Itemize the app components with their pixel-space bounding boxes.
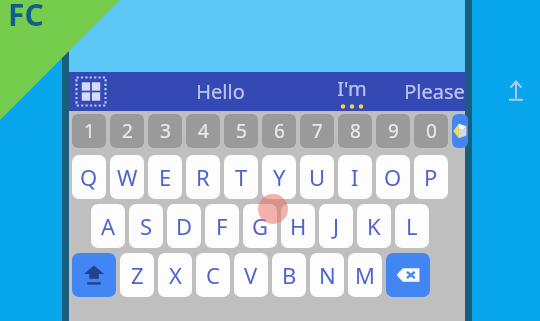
button[interactable]: 7 xyxy=(300,114,334,148)
staticText: J xyxy=(333,211,340,241)
staticText: V xyxy=(244,260,258,290)
button[interactable]: X xyxy=(158,253,192,297)
button[interactable]: G xyxy=(243,204,277,248)
staticText: T xyxy=(235,162,248,192)
button[interactable]: 3 xyxy=(148,114,182,148)
staticText: I xyxy=(351,162,359,192)
staticText: L xyxy=(406,211,418,241)
staticText: Q xyxy=(80,162,98,192)
button[interactable]: 1 xyxy=(72,114,106,148)
staticText: R xyxy=(196,162,210,192)
staticText: U xyxy=(309,162,326,192)
staticText: O xyxy=(384,162,402,192)
button[interactable]: P xyxy=(414,155,448,199)
button[interactable]: Shift xyxy=(72,253,116,297)
staticText: F xyxy=(216,211,228,241)
button[interactable]: F xyxy=(205,204,239,248)
staticText: H xyxy=(290,211,307,241)
button[interactable]: H xyxy=(281,204,315,248)
button[interactable]: Please xyxy=(395,72,473,111)
button[interactable]: 5 xyxy=(224,114,258,148)
staticText: E xyxy=(159,162,172,192)
button[interactable]: S xyxy=(129,204,163,248)
button[interactable]: 9 xyxy=(376,114,410,148)
button[interactable]: Z xyxy=(120,253,154,297)
button[interactable]: T xyxy=(224,155,258,199)
button[interactable]: W xyxy=(110,155,144,199)
button[interactable]: 0 xyxy=(414,114,448,148)
button[interactable]: Backspace xyxy=(386,253,430,297)
button[interactable]: R xyxy=(186,155,220,199)
staticText: 9 xyxy=(388,118,399,144)
button[interactable]: Keyboard menu xyxy=(75,76,107,107)
staticText: A xyxy=(101,211,116,241)
button[interactable]: 2 xyxy=(110,114,144,148)
button[interactable]: U xyxy=(300,155,334,199)
button[interactable]: Expand keyboard xyxy=(499,72,533,111)
staticText: 1 xyxy=(84,118,95,144)
button[interactable]: Stickers xyxy=(452,114,468,148)
button[interactable]: B xyxy=(272,253,306,297)
staticText: Hello xyxy=(196,78,245,105)
staticText: D xyxy=(176,211,193,241)
staticText: 3 xyxy=(160,118,171,144)
staticText: 6 xyxy=(274,118,285,144)
staticText: K xyxy=(367,211,381,241)
staticText: W xyxy=(117,162,138,192)
staticText: C xyxy=(206,260,220,290)
staticText: 5 xyxy=(236,118,247,144)
button[interactable]: Hello xyxy=(181,72,259,111)
staticText: B xyxy=(282,260,297,290)
staticText: M xyxy=(355,260,375,290)
staticText: I'm xyxy=(337,75,367,102)
staticText: 0 xyxy=(426,118,437,144)
button[interactable]: 4 xyxy=(186,114,220,148)
button[interactable]: V xyxy=(234,253,268,297)
button[interactable]: I'm xyxy=(313,72,391,111)
staticText: X xyxy=(169,260,182,290)
button[interactable]: D xyxy=(167,204,201,248)
button[interactable]: E xyxy=(148,155,182,199)
staticText: N xyxy=(319,260,336,290)
button[interactable]: Y xyxy=(262,155,296,199)
button[interactable]: I xyxy=(338,155,372,199)
button[interactable]: L xyxy=(395,204,429,248)
staticText: Please xyxy=(404,78,465,105)
staticText: S xyxy=(140,211,153,241)
button[interactable]: O xyxy=(376,155,410,199)
staticText: 8 xyxy=(350,118,361,144)
button[interactable]: C xyxy=(196,253,230,297)
button[interactable]: N xyxy=(310,253,344,297)
button[interactable]: Q xyxy=(72,155,106,199)
staticText: 7 xyxy=(312,118,323,144)
staticText: P xyxy=(424,162,438,192)
button[interactable]: A xyxy=(91,204,125,248)
button[interactable]: M xyxy=(348,253,382,297)
staticText: Y xyxy=(273,162,286,192)
button[interactable]: 8 xyxy=(338,114,372,148)
staticText: Z xyxy=(131,260,144,290)
button[interactable]: 6 xyxy=(262,114,296,148)
staticText: FC xyxy=(8,0,44,35)
staticText: 2 xyxy=(122,118,133,144)
staticText: G xyxy=(252,211,269,241)
button[interactable]: J xyxy=(319,204,353,248)
staticText: 4 xyxy=(198,118,209,144)
button[interactable]: K xyxy=(357,204,391,248)
